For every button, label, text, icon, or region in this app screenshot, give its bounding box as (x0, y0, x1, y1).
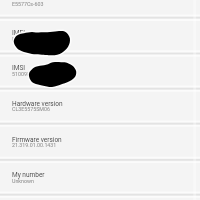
staticText: Hardware version (12, 100, 63, 108)
staticText: E5577Cs-603 (12, 1, 44, 7)
button[interactable]: IMSI (0, 53, 200, 89)
staticText: CL3E5575SM06 (12, 106, 50, 112)
button[interactable]: Model number (0, 0, 200, 18)
button[interactable]: Hardware version (0, 89, 200, 124)
staticText: Unknown (12, 178, 34, 184)
staticText: 510098426181930 (12, 71, 57, 77)
button[interactable]: Firmware version (0, 124, 200, 160)
button[interactable]: IMEI (0, 18, 200, 54)
staticText: IMEI (12, 29, 25, 37)
button[interactable]: My number (0, 160, 200, 195)
staticText: 867758021191675 (12, 36, 57, 42)
staticText: IMSI (12, 64, 26, 72)
staticText: Firmware version (12, 136, 62, 144)
staticText: 21.319.01.00.1431 (12, 142, 57, 148)
staticText: My number (12, 171, 45, 179)
